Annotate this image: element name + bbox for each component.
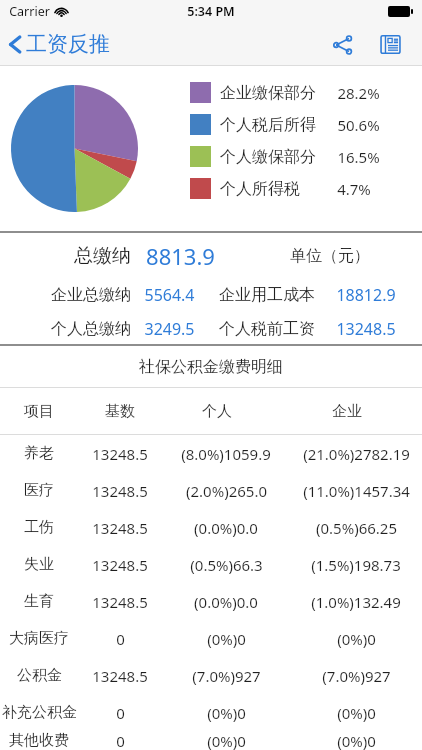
button[interactable]: 大病医疗 [0,620,422,657]
staticText: 企业总缴纳 [51,285,131,305]
staticText: 大病医疗 [9,629,69,648]
staticText: 基数 [105,402,135,421]
staticText: 个人总缴纳 [51,319,131,339]
staticText: 0 [116,731,125,750]
staticText: Carrier [9,3,50,20]
staticText: 公积金 [17,666,62,685]
staticText: (0%)0 [207,703,246,723]
staticText: (21.0%)2782.19 [303,444,410,464]
staticText: 社保公积金缴费明细 [139,357,283,377]
staticText: (0.5%)66.25 [316,518,397,538]
staticText: (2.0%)265.0 [186,481,267,501]
staticText: 个人税前工资 [219,319,315,339]
staticText: 0 [116,703,125,723]
staticText: (0%)0 [337,731,376,750]
button[interactable]: 个人缴保部分 [190,146,397,167]
staticText: 其他收费 [9,731,69,750]
staticText: (1.0%)132.49 [311,592,401,612]
staticText: 13248.5 [92,555,148,575]
button[interactable]: 工资反推 [0,26,118,62]
staticText: (0.0%)0.0 [194,518,258,538]
button[interactable]: 公积金 [0,657,422,694]
staticText: (0%)0 [337,629,376,649]
button[interactable]: 补充公积金 [0,694,422,731]
staticText: (0%)0 [337,703,376,723]
staticText: 失业 [24,555,54,574]
staticText: 18812.9 [336,284,396,306]
staticText: (0.0%)0.0 [194,592,258,612]
staticText: 养老 [24,444,54,463]
staticText: (0%)0 [207,629,246,649]
staticText: 企业缴保部分 [220,83,316,103]
staticText: (8.0%)1059.9 [181,444,271,464]
staticText: 总缴纳 [74,244,131,268]
staticText: 5564.4 [144,284,195,306]
staticText: (7.0%)927 [322,666,391,686]
button[interactable]: 企业缴保部分 [190,82,397,103]
staticText: 个人 [202,402,232,421]
button[interactable]: 其他收费 [0,731,422,750]
staticText: 4.7% [337,179,371,199]
staticText: 13248.5 [92,592,148,612]
staticText: (0%)0 [207,731,246,750]
staticText: 5:34 PM [187,3,235,20]
staticText: 工资反推 [26,31,110,57]
staticText: 8813.9 [146,241,215,271]
staticText: 个人税后所得 [220,115,316,135]
staticText: 项目 [24,402,54,421]
staticText: 生育 [24,592,54,611]
staticText: (7.0%)927 [192,666,261,686]
button[interactable]: Report [372,26,409,63]
staticText: 个人所得税 [220,179,300,199]
staticText: (1.5%)198.73 [311,555,401,575]
staticText: 3249.5 [144,318,195,340]
staticText: 16.5% [337,147,380,167]
button[interactable]: Share [325,27,361,63]
staticText: (0.5%)66.3 [190,555,263,575]
staticText: 企业 [332,402,362,421]
staticText: 13248.5 [92,481,148,501]
button[interactable]: 失业 [0,546,422,583]
button[interactable]: 个人所得税 [190,178,397,199]
staticText: (11.0%)1457.34 [303,481,410,501]
staticText: 50.6% [337,115,380,135]
staticText: 个人缴保部分 [220,147,316,167]
staticText: 单位（元） [290,246,370,266]
staticText: 28.2% [337,83,380,103]
staticText: 医疗 [24,481,54,500]
staticText: 13248.5 [92,518,148,538]
staticText: 补充公积金 [2,703,77,722]
button[interactable]: 生育 [0,583,422,620]
button[interactable]: 工伤 [0,509,422,546]
button[interactable]: 个人税后所得 [190,114,397,135]
staticText: 0 [116,629,125,649]
staticText: 工伤 [24,518,54,537]
staticText: 13248.5 [336,318,396,340]
staticText: 13248.5 [92,666,148,686]
button[interactable]: 养老 [0,435,422,472]
button[interactable]: 医疗 [0,472,422,509]
staticText: 企业用工成本 [219,285,315,305]
staticText: 13248.5 [92,444,148,464]
